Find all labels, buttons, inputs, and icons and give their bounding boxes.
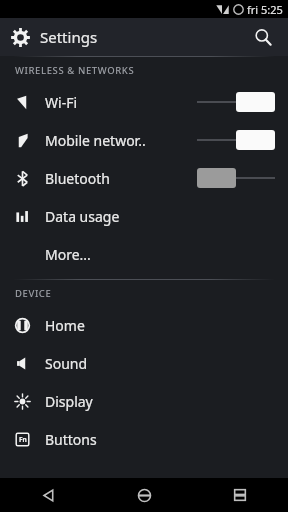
button[interactable]: Data usage xyxy=(0,197,288,235)
staticText: fri 5:25 xyxy=(247,2,283,17)
button[interactable]: Recent apps xyxy=(192,478,288,512)
staticText: More... xyxy=(45,245,91,264)
button[interactable]: Display xyxy=(0,382,288,420)
button[interactable]: Mobile networ.. xyxy=(0,121,288,159)
staticText: DEVICE xyxy=(15,287,52,300)
staticText: Sound xyxy=(45,354,88,373)
staticText: Fn xyxy=(19,435,27,444)
staticText: Display xyxy=(45,392,93,411)
staticText: Buttons xyxy=(45,430,97,449)
staticText: Home xyxy=(45,316,85,335)
button[interactable]: Fn xyxy=(0,420,288,458)
button[interactable]: Home xyxy=(96,478,192,512)
button[interactable]: More... xyxy=(0,235,288,273)
button[interactable]: Home xyxy=(0,306,288,344)
staticText: Mobile networ.. xyxy=(45,131,146,150)
button[interactable]: Back xyxy=(0,478,96,512)
button[interactable]: Sound xyxy=(0,344,288,382)
staticText: Bluetooth xyxy=(45,169,110,188)
button[interactable]: Bluetooth xyxy=(0,159,288,197)
button[interactable]: Search xyxy=(246,20,280,54)
staticText: Data usage xyxy=(45,207,120,226)
button[interactable]: Wi-Fi xyxy=(0,83,288,121)
staticText: Settings xyxy=(40,27,98,47)
staticText: WIRELESS & NETWORKS xyxy=(15,64,135,77)
staticText: Wi-Fi xyxy=(45,93,78,112)
